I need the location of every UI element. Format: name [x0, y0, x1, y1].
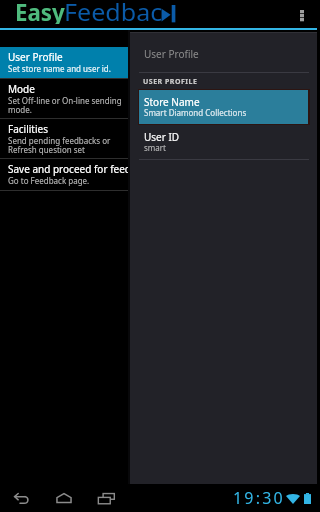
staticText: Set Off-line or On-line sending mode. [8, 95, 122, 116]
staticText: smart [144, 142, 166, 153]
staticText: USER PROFILE [143, 77, 198, 87]
button[interactable]: Recent apps [91, 484, 121, 512]
staticText: User Profile [144, 47, 199, 61]
staticText: Go to Feedback page. [8, 175, 90, 186]
staticText: Smart Diamond Collections [144, 107, 247, 118]
button[interactable]: Facilities [0, 119, 128, 158]
button[interactable]: Home [49, 484, 79, 512]
staticText: Send pending feedbacks or Refresh questi… [8, 135, 111, 156]
button[interactable]: More options [290, 2, 314, 30]
button[interactable]: User ID [139, 124, 308, 159]
button[interactable]: Store Name [139, 90, 308, 124]
staticText: Store Name [144, 95, 200, 109]
staticText: User Profile [8, 50, 63, 64]
button[interactable]: Save and proceed for feedback [0, 159, 128, 190]
staticText: Facilities [8, 122, 48, 136]
staticText: Feedbac [64, 0, 163, 24]
button[interactable]: User Profile [0, 47, 128, 78]
staticText: Set store name and user id. [8, 63, 111, 74]
button[interactable]: Mode [0, 79, 128, 118]
button[interactable]: Back [6, 484, 36, 512]
staticText: Save and proceed for feedback [8, 162, 128, 176]
staticText: 19:30 [233, 487, 285, 509]
staticText: Mode [8, 82, 35, 96]
staticText: User ID [144, 130, 180, 144]
staticText: Easy [15, 0, 65, 24]
